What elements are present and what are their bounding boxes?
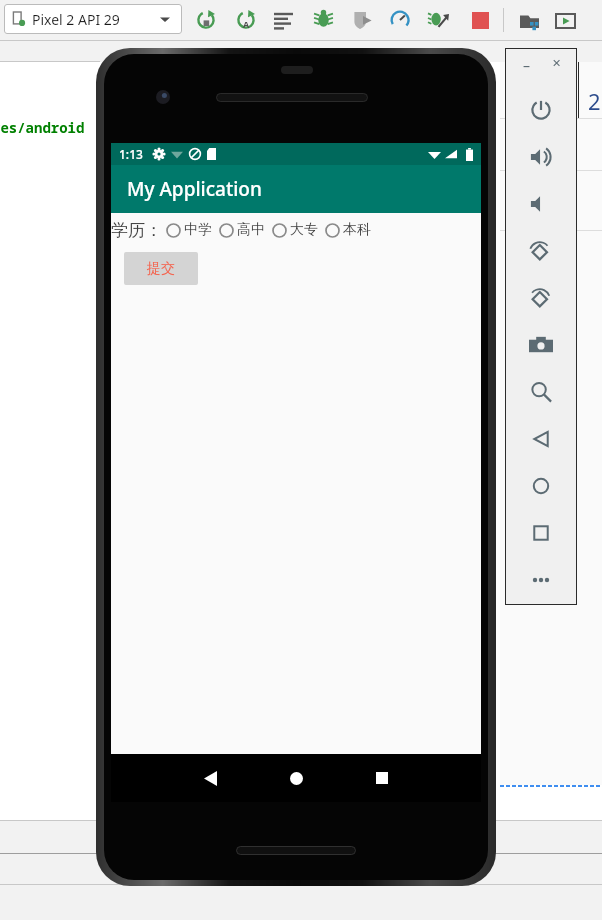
staticText: 2 bbox=[588, 86, 601, 116]
staticText: res/android bbox=[0, 118, 85, 137]
button[interactable]: Home bbox=[282, 764, 310, 792]
button[interactable]: 大专 bbox=[268, 213, 321, 247]
staticText: 大专 bbox=[290, 221, 318, 239]
button[interactable]: Camera bbox=[529, 333, 553, 357]
button[interactable]: Recents bbox=[368, 764, 396, 792]
staticText: 1:13 bbox=[119, 146, 143, 162]
button[interactable]: Zoom bbox=[529, 380, 553, 404]
button[interactable]: Home bbox=[529, 474, 553, 498]
button[interactable]: 高中 bbox=[215, 213, 268, 247]
staticText: – bbox=[523, 56, 530, 75]
staticText: My Application bbox=[127, 176, 262, 202]
button[interactable]: Rotate left bbox=[529, 239, 553, 263]
button[interactable]: Volume up bbox=[529, 145, 553, 169]
staticText: 本科 bbox=[343, 221, 371, 239]
button[interactable]: Attach debugger bbox=[428, 9, 449, 30]
staticText: Pixel 2 API 29 bbox=[32, 10, 120, 29]
button[interactable]: Profile bbox=[390, 10, 410, 30]
button[interactable]: Run bbox=[196, 10, 216, 30]
staticText: 学历： bbox=[111, 220, 162, 241]
staticText: 提交 bbox=[147, 260, 175, 278]
button[interactable]: Debug bbox=[313, 9, 334, 30]
staticText: ✕ bbox=[552, 57, 562, 70]
staticText: 中学 bbox=[184, 221, 212, 239]
button[interactable]: 本科 bbox=[321, 213, 374, 247]
button[interactable]: Rerun bbox=[236, 10, 256, 30]
button[interactable]: 中学 bbox=[162, 213, 215, 247]
button[interactable]: Pixel 2 API 29 bbox=[4, 4, 182, 34]
button[interactable]: More bbox=[529, 568, 553, 592]
button[interactable]: Back bbox=[196, 764, 224, 792]
staticText: A bbox=[243, 18, 250, 30]
button[interactable]: AVD Manager bbox=[556, 11, 576, 31]
button[interactable]: Back bbox=[529, 427, 553, 451]
staticText: 高中 bbox=[237, 221, 265, 239]
button[interactable]: Device file explorer bbox=[520, 11, 540, 31]
button[interactable]: Rotate right bbox=[529, 286, 553, 310]
button[interactable]: 提交 bbox=[124, 252, 198, 285]
button[interactable]: Volume down bbox=[529, 192, 553, 216]
button[interactable]: Power bbox=[529, 98, 553, 122]
button[interactable]: Overview bbox=[529, 521, 553, 545]
button[interactable]: Run with coverage bbox=[352, 10, 372, 30]
button[interactable]: Logcat bbox=[274, 10, 294, 30]
